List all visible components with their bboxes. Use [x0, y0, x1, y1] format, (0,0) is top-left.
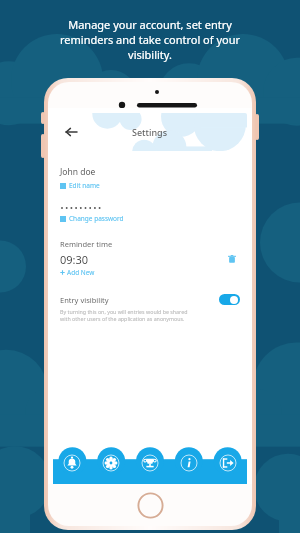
button[interactable]: Add New	[60, 268, 95, 277]
button[interactable]: Edit name	[60, 181, 100, 190]
staticText: Manage your account, set entry reminders…	[10, 17, 290, 62]
button[interactable]: Settings	[91, 451, 130, 475]
staticText: Edit name	[69, 181, 100, 190]
staticText: By turning this on, you will entries wou…	[60, 308, 188, 322]
button[interactable]: Entry visibility	[60, 294, 240, 305]
button[interactable]: Info	[169, 451, 208, 475]
staticText: John doe	[60, 166, 96, 178]
button[interactable]: Back	[60, 121, 82, 143]
staticText: 09:30	[60, 252, 89, 267]
button[interactable]: Change password	[60, 214, 124, 223]
staticText: Change password	[69, 214, 124, 223]
button[interactable]: Delete reminder	[224, 251, 240, 267]
button[interactable]: Achievements	[130, 451, 169, 475]
staticText: Settings	[132, 126, 168, 138]
staticText: Entry visibility	[60, 295, 109, 305]
button[interactable]: Notifications	[53, 451, 91, 475]
button[interactable]: Logout	[208, 451, 247, 475]
staticText: Reminder time	[60, 239, 113, 249]
staticText: Add New	[67, 268, 95, 277]
